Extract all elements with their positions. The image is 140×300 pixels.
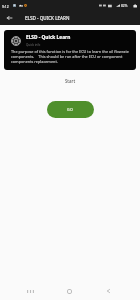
button[interactable]: Back xyxy=(97,280,119,300)
staticText: ELSD - Quick Learn xyxy=(26,34,71,41)
button[interactable]: Home xyxy=(58,280,80,300)
staticText: Start xyxy=(0,78,140,84)
button[interactable]: Navigate up xyxy=(0,11,18,25)
button[interactable]: Recent apps xyxy=(19,280,41,300)
button[interactable]: ELSD - Quick Learn xyxy=(4,30,136,70)
button[interactable]: GO xyxy=(47,101,94,118)
staticText: 9:12 xyxy=(2,4,9,8)
staticText: GO xyxy=(67,107,74,112)
staticText: ELSD - QUICK LEARN xyxy=(25,15,70,21)
staticText: The purpose of this function is for the … xyxy=(11,49,129,64)
staticText: 82% xyxy=(121,4,128,8)
staticText: Quick info xyxy=(26,43,41,47)
